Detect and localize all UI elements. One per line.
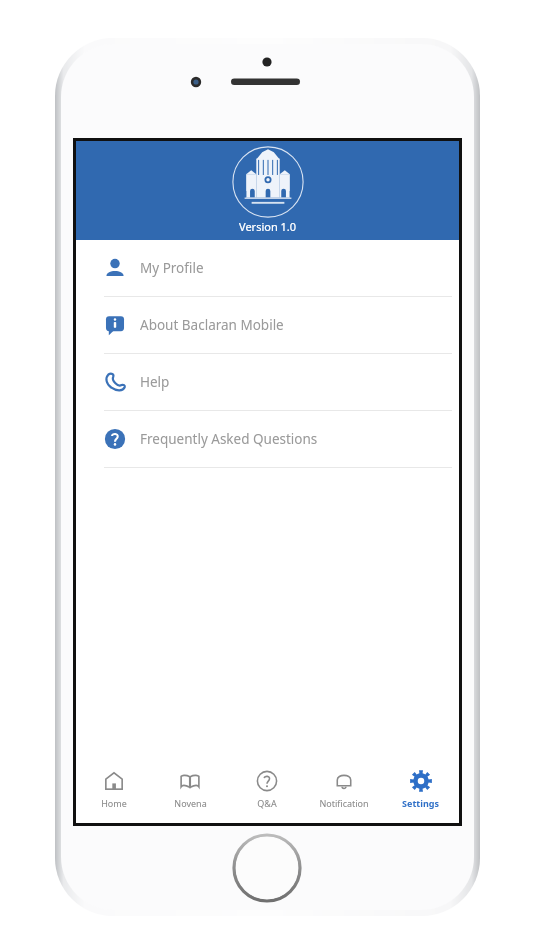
- other: Settings: [409, 769, 433, 793]
- staticText: Q&A: [257, 797, 277, 809]
- other: Home: [102, 769, 126, 793]
- button[interactable]: Help: [76, 354, 459, 410]
- staticText: Frequently Asked Questions: [140, 430, 318, 448]
- other: Baclaran Church logo: [229, 143, 307, 221]
- other: Q and A: [255, 769, 279, 793]
- other: Novena: [178, 769, 202, 793]
- button[interactable]: My Profile: [76, 240, 459, 296]
- button[interactable]: Settings: [382, 761, 459, 823]
- staticText: Version 1.0: [239, 219, 297, 234]
- staticText: Help: [140, 373, 170, 391]
- button[interactable]: Q and A: [228, 761, 305, 823]
- button[interactable]: Novena: [152, 761, 228, 823]
- other: Notification: [332, 769, 356, 793]
- staticText: Home: [101, 797, 127, 809]
- button[interactable]: Notification: [305, 761, 382, 823]
- button[interactable]: Home: [76, 761, 152, 823]
- staticText: Novena: [174, 797, 207, 809]
- staticText: Notification: [319, 797, 369, 809]
- staticText: My Profile: [140, 259, 204, 277]
- staticText: About Baclaran Mobile: [140, 316, 284, 334]
- button[interactable]: About Baclaran Mobile: [76, 297, 459, 353]
- button[interactable]: Frequently Asked Questions: [76, 411, 459, 467]
- staticText: Settings: [402, 797, 439, 809]
